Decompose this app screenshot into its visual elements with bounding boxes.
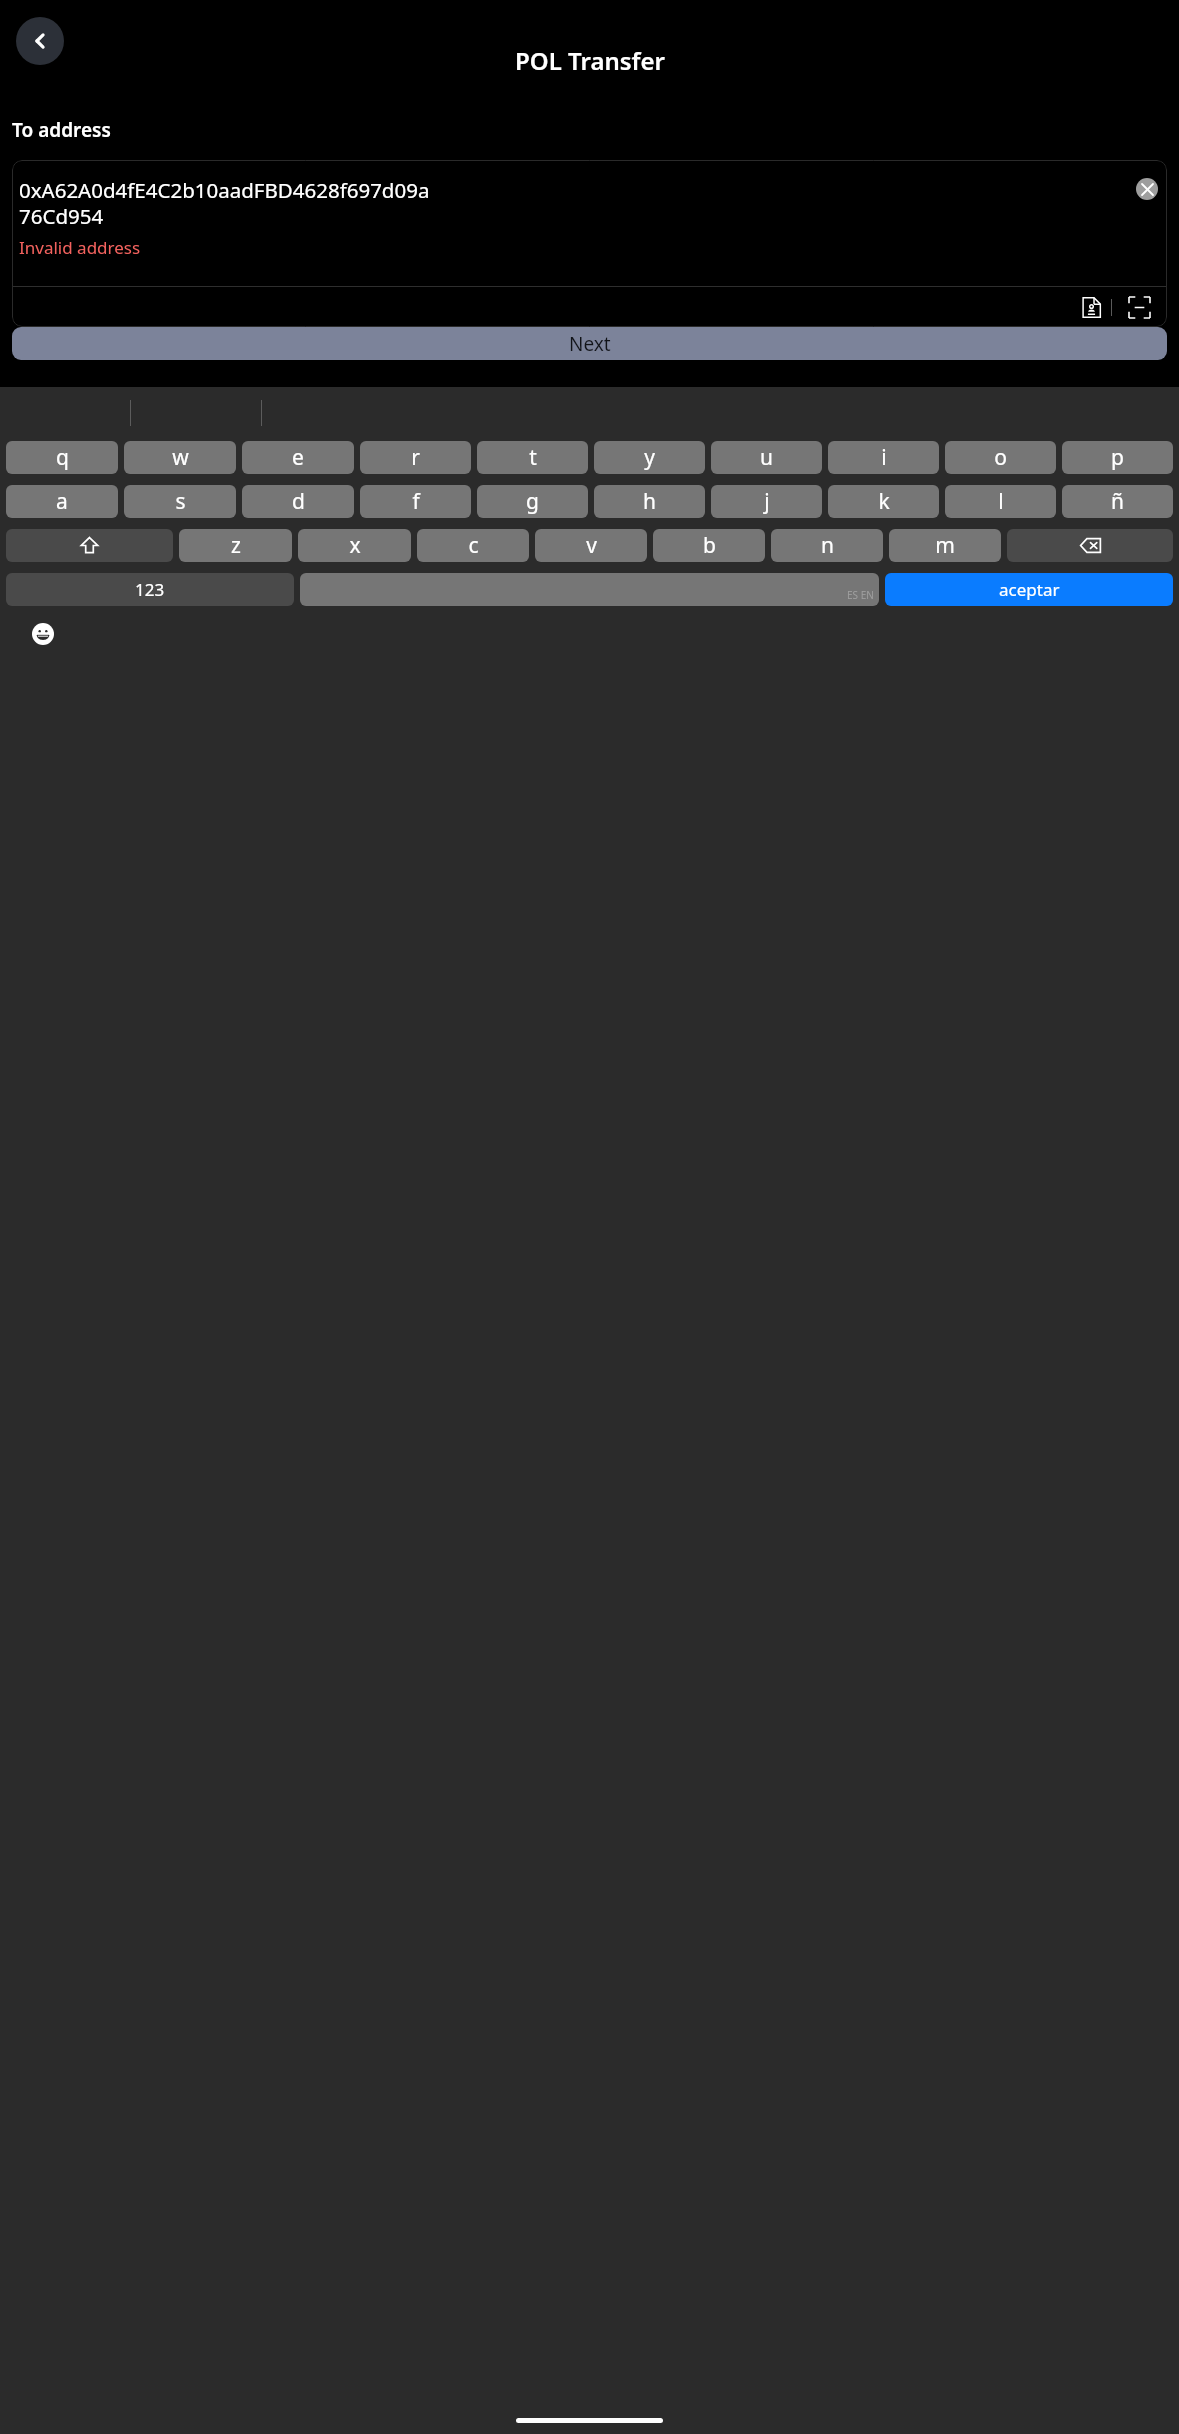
button[interactable]: m [889,529,1001,562]
staticText: r [411,443,420,472]
staticText: n [821,531,834,560]
button[interactable]: e [242,441,354,474]
button[interactable]: o [945,441,1056,474]
staticText: u [760,443,773,472]
staticText: ES EN [847,588,874,602]
staticText: Next [569,331,611,357]
staticText: To address [12,117,111,143]
staticText: POL Transfer [515,44,665,77]
button[interactable]: a [6,485,118,518]
staticText: g [526,487,539,516]
staticText: v [586,531,597,560]
button[interactable]: v [535,529,647,562]
button[interactable]: s [124,485,236,518]
staticText: h [643,487,656,516]
button[interactable]: y [594,441,705,474]
staticText: a [56,487,68,516]
button[interactable]: Emoji [29,620,57,648]
button[interactable]: Backspace [1007,529,1173,562]
button[interactable]: p [1062,441,1173,474]
staticText: t [529,443,537,472]
button[interactable]: r [360,441,471,474]
button[interactable]: Shift [6,529,173,562]
button[interactable]: u [711,441,822,474]
button[interactable]: g [477,485,588,518]
staticText: 123 [135,578,165,601]
staticText: i [881,443,887,472]
button[interactable]: l [945,485,1056,518]
button[interactable]: w [124,441,236,474]
staticText: x [349,531,361,560]
button[interactable]: n [771,529,883,562]
staticText: p [1111,443,1124,472]
button[interactable]: i [828,441,939,474]
button[interactable]: Clear [1136,178,1158,200]
staticText: d [292,487,305,516]
staticText: k [878,487,890,516]
staticText: j [764,487,770,516]
button[interactable]: t [477,441,588,474]
staticText: l [998,487,1004,516]
staticText: q [56,443,69,472]
staticText: e [292,443,304,472]
button[interactable]: aceptar [885,573,1173,606]
button[interactable]: j [711,485,822,518]
button[interactable]: q [6,441,118,474]
button[interactable]: 123 [6,573,294,606]
button[interactable]: Next [12,327,1167,360]
staticText: w [172,443,189,472]
button[interactable]: f [360,485,471,518]
staticText: c [468,531,479,560]
staticText: Invalid address [19,236,141,259]
button[interactable]: ñ [1062,485,1173,518]
button[interactable]: k [828,485,939,518]
button[interactable]: d [242,485,354,518]
staticText: b [703,531,716,560]
staticText: ñ [1111,487,1124,516]
staticText: y [644,443,655,472]
staticText: o [994,443,1007,472]
button[interactable]: Back [16,17,64,65]
staticText: z [231,531,241,560]
staticText: aceptar [999,578,1060,601]
button[interactable]: c [417,529,529,562]
staticText: s [175,487,186,516]
button[interactable]: h [594,485,705,518]
button[interactable]: x [298,529,411,562]
button[interactable]: Scan QR code [1119,287,1159,327]
button[interactable]: Choose contact [1071,287,1111,327]
staticText: f [412,487,420,516]
staticText: m [935,531,955,560]
button[interactable]: z [179,529,292,562]
staticText: 0xA62A0d4fE4C2b10aadFBD4628f697d09a 76Cd… [19,176,430,230]
button[interactable]: b [653,529,765,562]
button[interactable]: Space [300,573,879,606]
